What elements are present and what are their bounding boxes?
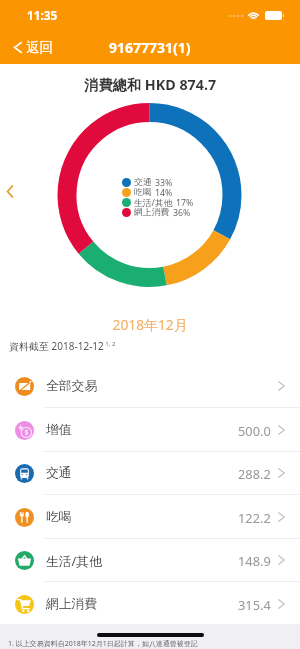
staticText: 148.9	[238, 552, 271, 569]
button[interactable]: 全部交易	[0, 364, 300, 408]
staticText: 11:35	[27, 7, 58, 23]
staticText: 交通	[134, 177, 152, 187]
button[interactable]: 網上消費	[0, 582, 300, 626]
button[interactable]: 交通	[0, 451, 300, 495]
staticText: 吃喝	[46, 509, 72, 525]
staticText: 2018年12月	[0, 315, 300, 334]
staticText: 返回	[26, 39, 53, 56]
staticText: 288.2	[238, 465, 271, 482]
staticText: 122.2	[238, 509, 271, 526]
staticText: 生活/其他	[46, 552, 102, 569]
staticText: 全部交易	[46, 378, 98, 394]
button[interactable]: 返回	[0, 34, 65, 61]
staticText: 網上消費	[134, 207, 170, 217]
staticText: 315.4	[238, 596, 271, 613]
button[interactable]: Previous month	[0, 179, 20, 204]
staticText: 1. 以上交易資料自2018年12月1日起計算，如八達通曾被登記	[8, 639, 198, 649]
staticText: 吃喝	[134, 187, 152, 197]
staticText: 資料截至 2018-12-12 1, 2	[9, 339, 116, 353]
button[interactable]: 生活/其他	[0, 538, 300, 582]
staticText: 網上消費	[46, 596, 98, 612]
button[interactable]: 增值	[0, 408, 300, 452]
staticText: 生活/其他	[134, 197, 173, 207]
staticText: 33%	[155, 177, 173, 187]
staticText: 91677731(1)	[109, 38, 191, 57]
staticText: 增值	[46, 422, 72, 438]
button[interactable]: 吃喝	[0, 495, 300, 539]
staticText: 500.0	[238, 422, 271, 439]
staticText: 36%	[173, 207, 191, 217]
staticText: 交通	[46, 465, 72, 481]
staticText: 17%	[176, 197, 194, 207]
staticText: 消費總和 HKD 874.7	[0, 75, 300, 95]
staticText: 14%	[155, 187, 173, 197]
